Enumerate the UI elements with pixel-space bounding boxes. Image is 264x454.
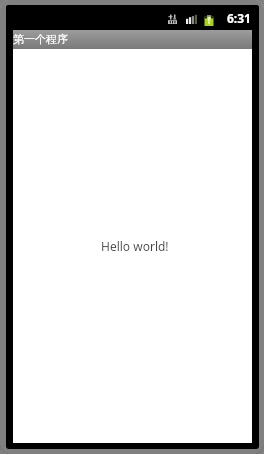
button[interactable]: 第一个程序 [13,30,252,49]
other: Mobile signal strength [186,14,197,24]
staticText: 6:31 [227,10,251,26]
button[interactable]: USB connected [6,5,259,30]
staticText: 第一个程序 [13,32,68,46]
staticText: Hello world! [101,238,169,254]
other: USB connected [168,14,177,24]
other: Battery charging [204,15,214,26]
